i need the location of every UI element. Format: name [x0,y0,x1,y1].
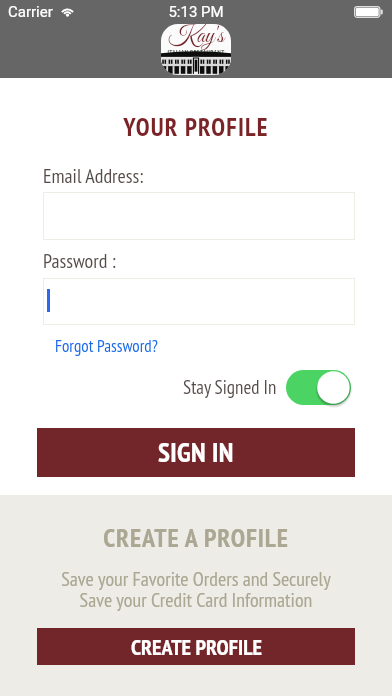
staticText: CREATE A PROFILE [0,521,392,555]
staticText: ITALIAN RESTAURANT [161,47,231,55]
button[interactable]: SIGN IN [37,428,355,477]
staticText: Kay's [161,24,231,52]
staticText: SIGN IN [158,435,234,470]
staticText: Stay Signed In [183,375,277,400]
staticText: Password : [43,248,116,274]
button[interactable]: Password [43,278,355,325]
other: Battery full [354,6,384,18]
staticText: Save your Favorite Orders and Securely S… [0,566,392,613]
other: Wi-Fi signal [60,6,75,17]
staticText: YOUR PROFILE [0,111,392,143]
staticText: Carrier [8,3,53,21]
button[interactable]: Stay Signed In toggle [286,370,351,405]
staticText: Forgot Password? [55,335,158,357]
button[interactable]: Forgot Password? [55,335,158,357]
staticText: 5:13 PM [0,3,392,21]
button[interactable]: CREATE PROFILE [37,628,355,665]
button[interactable]: Email Address [43,192,355,240]
staticText: Email Address: [43,163,144,189]
staticText: CREATE PROFILE [131,633,262,661]
